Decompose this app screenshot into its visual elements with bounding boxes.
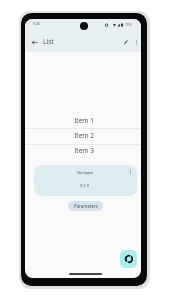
staticText: Item 2 bbox=[74, 131, 94, 140]
staticText: 79% bbox=[125, 22, 132, 27]
button[interactable]: Item 1 bbox=[25, 113, 141, 128]
button[interactable]: Back bbox=[28, 36, 41, 49]
staticText: 9:46 bbox=[33, 21, 40, 26]
staticText: Parameters bbox=[74, 203, 98, 209]
staticText: 0 / 3 bbox=[80, 183, 89, 189]
button[interactable]: No repeat bbox=[34, 165, 137, 196]
button[interactable]: Item 3 bbox=[25, 143, 141, 158]
staticText: No repeat bbox=[77, 170, 93, 174]
staticText: Item 1 bbox=[74, 116, 94, 125]
staticText: Item 3 bbox=[74, 146, 94, 155]
button[interactable]: Edit bbox=[119, 36, 132, 49]
button[interactable]: Sync bbox=[120, 250, 137, 268]
button[interactable]: Item 2 bbox=[25, 128, 141, 143]
staticText: List bbox=[43, 37, 54, 46]
button[interactable]: Card options bbox=[126, 167, 135, 176]
button[interactable]: More options bbox=[130, 36, 141, 49]
button[interactable]: Parameters bbox=[68, 201, 103, 211]
